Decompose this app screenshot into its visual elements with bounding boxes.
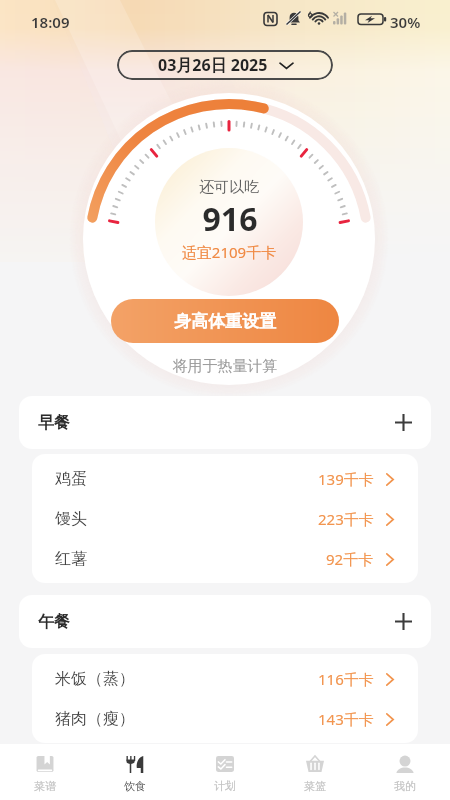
staticText: 早餐 <box>38 413 70 433</box>
staticText: 我的 <box>394 779 416 793</box>
staticText: 30% <box>390 12 421 32</box>
staticText: 馒头 <box>55 509 87 529</box>
staticText: 红薯 <box>55 549 87 569</box>
staticText: 猪肉（瘦） <box>55 709 135 729</box>
button[interactable]: 米饭（蒸） <box>32 659 418 699</box>
staticText: 午餐 <box>38 612 70 632</box>
staticText: 223千卡 <box>318 509 374 529</box>
button[interactable]: 红薯 <box>32 539 418 579</box>
button[interactable]: 我的 <box>360 744 450 793</box>
staticText: 还可以吃 <box>4 178 450 197</box>
staticText: 139千卡 <box>318 469 374 489</box>
button[interactable]: 菜谱 <box>0 744 90 793</box>
staticText: 菜谱 <box>34 779 56 793</box>
staticText: 916 <box>5 197 450 241</box>
button[interactable]: 菜篮 <box>270 744 360 793</box>
button[interactable]: 鸡蛋 <box>32 459 418 499</box>
button[interactable]: 馒头 <box>32 499 418 539</box>
staticText: 米饭（蒸） <box>55 669 135 689</box>
button[interactable]: 身高体重设置 <box>111 299 339 343</box>
staticText: 18:09 <box>31 12 70 32</box>
staticText: 身高体重设置 <box>174 311 276 332</box>
staticText: 计划 <box>214 779 236 793</box>
staticText: 适宜2109千卡 <box>4 242 450 262</box>
staticText: 菜篮 <box>304 779 326 793</box>
other: 添加 <box>395 414 412 431</box>
staticText: 鸡蛋 <box>55 469 87 489</box>
staticText: 将用于热量计算 <box>0 357 450 376</box>
staticText: 03月26日 2025 <box>158 54 268 76</box>
other: 添加 <box>395 613 412 630</box>
staticText: 116千卡 <box>318 669 374 689</box>
button[interactable]: 午餐 <box>19 595 431 648</box>
staticText: 饮食 <box>124 779 146 793</box>
button[interactable]: 早餐 <box>19 396 431 449</box>
staticText: 143千卡 <box>318 709 374 729</box>
button[interactable]: 饮食 <box>90 744 180 793</box>
button[interactable]: 计划 <box>180 744 270 793</box>
staticText: 92千卡 <box>326 549 374 569</box>
button[interactable]: 03月26日 2025 <box>117 50 333 80</box>
button[interactable]: 猪肉（瘦） <box>32 699 418 739</box>
